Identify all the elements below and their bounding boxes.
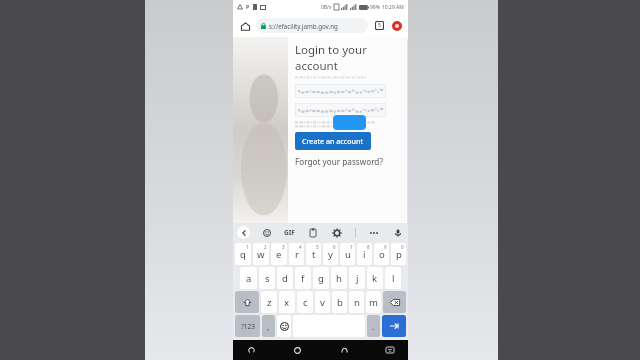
button[interactable]: Tabs: 5 [373,19,386,32]
staticText: t [312,248,316,261]
staticText: b [337,296,343,309]
staticText: 0 [401,244,404,250]
button[interactable]: , [262,315,275,337]
button[interactable]: q [235,243,251,265]
button[interactable]: x [279,291,295,313]
staticText: 3 [282,244,285,250]
staticText: l [392,272,395,285]
button[interactable]: y [323,243,338,265]
staticText: i [363,248,366,261]
button[interactable]: More options [368,227,380,239]
button[interactable]: v [315,291,330,313]
staticText: 8 [367,244,370,250]
staticText: p [396,248,402,261]
button[interactable]: Back [243,342,259,358]
button[interactable]: s://efacility.jamb.gov.ng [256,18,368,33]
button[interactable]: Next field [382,315,406,337]
button[interactable]: n [349,291,364,313]
button[interactable]: d [277,267,293,289]
button[interactable]: Stickers [261,227,273,239]
button[interactable]: i [357,243,372,265]
button[interactable]: Voice input [392,227,404,239]
button[interactable]: a [240,267,257,289]
button[interactable]: s [259,267,275,289]
button[interactable]: u [340,243,355,265]
button[interactable]: p [391,243,406,265]
button[interactable]: l [385,267,401,289]
staticText: j [356,272,359,285]
button[interactable]: Clipboard [307,227,319,239]
staticText: w [257,248,265,261]
staticText: y [328,248,333,261]
button[interactable]: Recents [336,342,352,358]
button[interactable]: j [349,267,365,289]
staticText: 5 [316,244,319,250]
button[interactable]: h [331,267,347,289]
button[interactable]: k [367,267,383,289]
staticText: u [345,248,351,261]
staticText: r [295,248,299,261]
staticText: 5 [378,22,381,29]
button[interactable]: m [366,291,381,313]
button[interactable]: f [295,267,311,289]
staticText: e [276,248,282,261]
staticText: Forgot your password? [295,156,383,167]
staticText: 9 [384,244,387,250]
staticText: . [372,321,375,332]
button[interactable]: z [261,291,277,313]
button[interactable]: Menu [390,19,403,32]
staticText: x [284,296,290,309]
button[interactable]: r [289,243,304,265]
staticText: z [267,296,272,309]
staticText: f [301,272,305,285]
button[interactable] [295,84,386,98]
button[interactable]: Shift [235,291,259,313]
staticText: 0B/s [321,4,332,11]
staticText: v [320,296,325,309]
staticText: g [318,272,324,285]
button[interactable]: Settings [331,227,343,239]
staticText: s://efacility.jamb.gov.ng [269,22,338,30]
button[interactable] [295,103,386,117]
staticText: P [246,4,250,11]
staticText: m [369,296,378,309]
button[interactable]: w [253,243,269,265]
staticText: 6 [333,244,336,250]
staticText: 10:29 AM [382,4,404,11]
button[interactable]: Backspace [383,291,406,313]
staticText: 2 [264,244,267,250]
button[interactable]: b [332,291,347,313]
button[interactable]: Home [289,342,305,358]
button[interactable]: Home [238,19,252,33]
button[interactable]: Emoji [277,315,291,337]
staticText: c [303,296,308,309]
staticText: GIF [284,228,295,237]
button[interactable]: e [271,243,287,265]
staticText: o [379,248,385,261]
staticText: Login to your [295,42,367,58]
staticText: h [336,272,342,285]
staticText: a [246,272,252,285]
button[interactable]: t [306,243,321,265]
staticText: 7 [350,244,353,250]
staticText: 1 [246,244,249,250]
staticText: , [267,321,270,332]
staticText: k [372,272,378,285]
button[interactable]: ?123 [235,315,260,337]
button[interactable]: Hide keyboard [382,342,398,358]
staticText: q [240,248,246,261]
staticText: ?123 [241,322,255,331]
button[interactable]: Back [237,226,250,239]
staticText: 99% [370,4,380,11]
button[interactable]: GIF [284,228,295,237]
button[interactable]: Create an account [295,132,371,150]
staticText: Create an account [302,136,364,146]
button[interactable]: c [297,291,313,313]
staticText: n [354,296,360,309]
button[interactable]: . [367,315,380,337]
button[interactable]: Forgot your password? [295,156,383,167]
button[interactable]: o [374,243,389,265]
button[interactable]: g [313,267,329,289]
staticText: 4 [299,244,302,250]
